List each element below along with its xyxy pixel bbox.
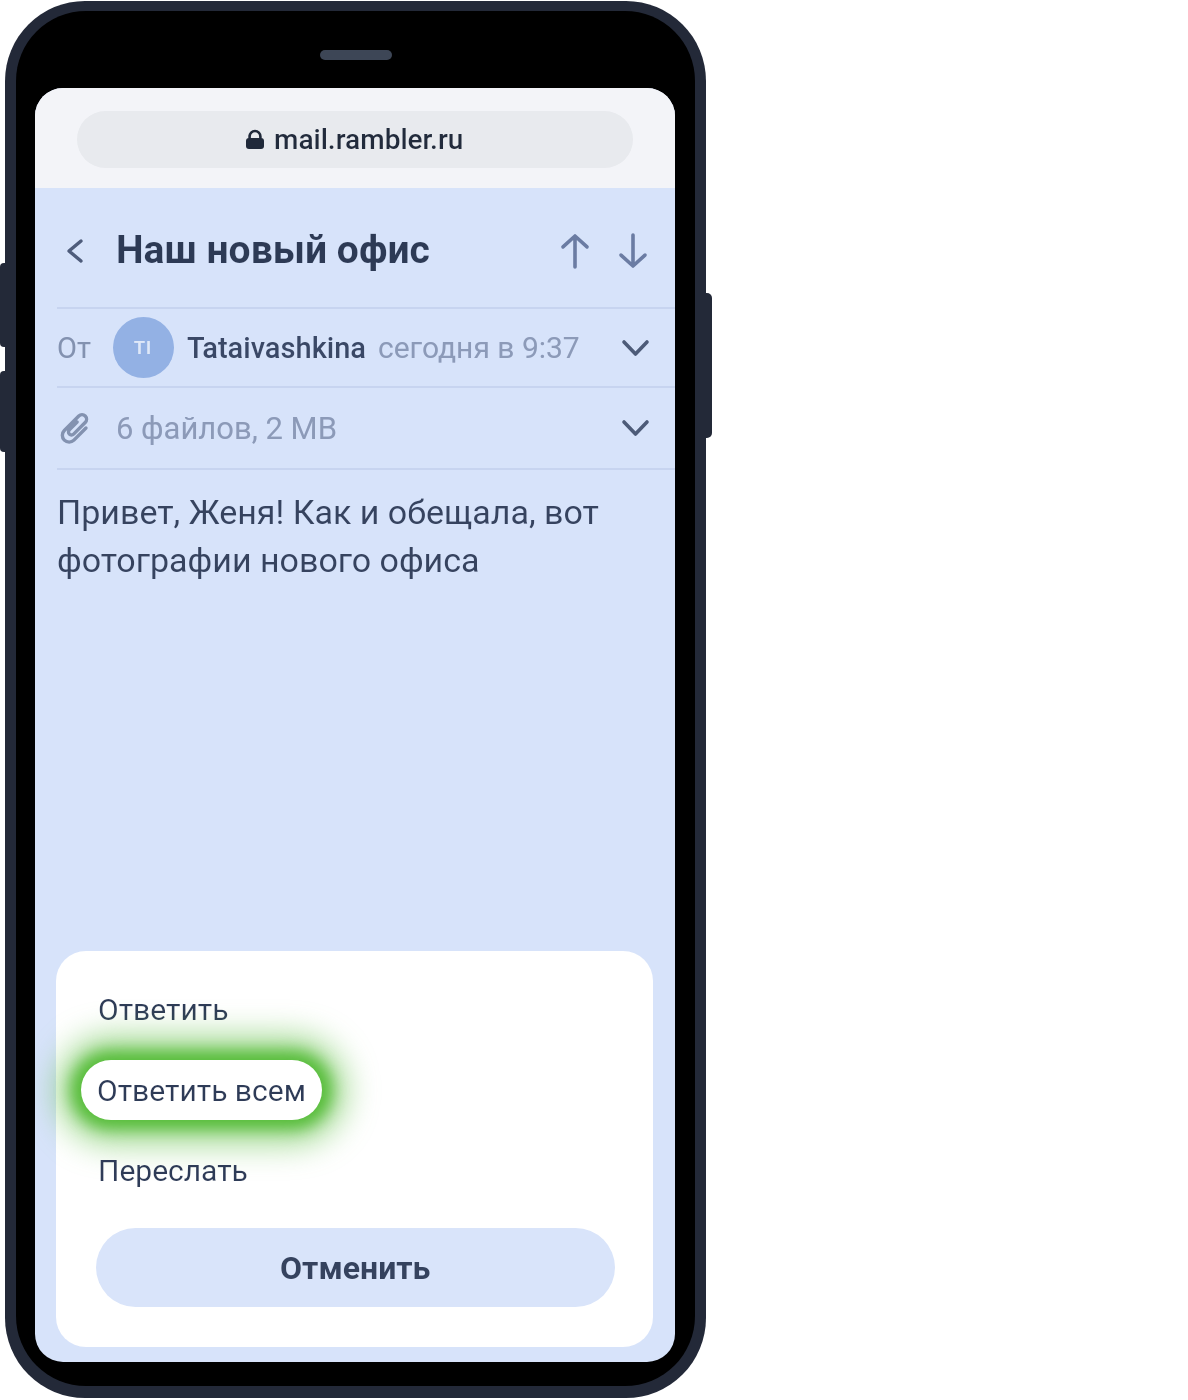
button[interactable] bbox=[53, 228, 97, 274]
staticText: Отменить bbox=[280, 1249, 431, 1287]
staticText: mail.rambler.ru bbox=[274, 123, 464, 156]
staticText: Переслать bbox=[98, 1153, 248, 1188]
staticText: сегодня в 9:37 bbox=[378, 330, 580, 365]
button[interactable]: mail.rambler.ru bbox=[77, 111, 633, 168]
button[interactable]: От bbox=[35, 309, 675, 386]
staticText: Привет, Женя! Как и обещала, вот фотогра… bbox=[57, 492, 599, 580]
button[interactable]: Ответить всем bbox=[81, 1060, 322, 1120]
staticText: TI bbox=[134, 337, 153, 358]
staticText: Ответить bbox=[98, 992, 229, 1027]
staticText: Наш новый офис bbox=[116, 227, 430, 273]
staticText: 6 файлов, 2 MB bbox=[116, 410, 337, 446]
button[interactable]: Ответить bbox=[98, 981, 229, 1037]
staticText: Ответить всем bbox=[97, 1073, 306, 1108]
staticText: Tataivashkina bbox=[187, 331, 367, 365]
button[interactable] bbox=[553, 228, 597, 274]
button[interactable] bbox=[611, 228, 655, 274]
button[interactable]: Переслать bbox=[98, 1142, 248, 1198]
button[interactable]: 6 файлов, 2 MB bbox=[35, 388, 675, 468]
button[interactable]: Отменить bbox=[96, 1228, 615, 1307]
staticText: От bbox=[57, 331, 91, 365]
